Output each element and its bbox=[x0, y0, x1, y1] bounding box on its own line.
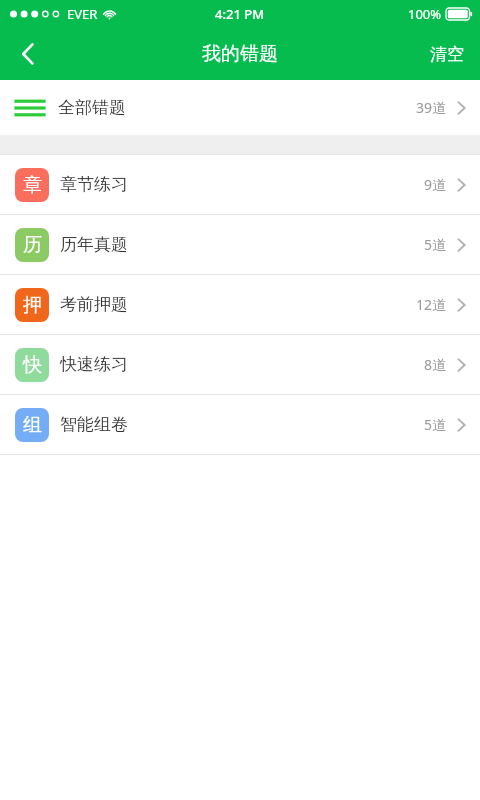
staticText: 5道 bbox=[424, 415, 447, 434]
button[interactable]: 组 bbox=[0, 395, 480, 454]
staticText: 智能组卷 bbox=[60, 414, 128, 435]
staticText: 快速练习 bbox=[60, 354, 128, 375]
button[interactable]: 押 bbox=[0, 275, 480, 334]
staticText: 8道 bbox=[424, 355, 447, 374]
staticText: 章节练习 bbox=[60, 174, 128, 195]
staticText: 考前押题 bbox=[60, 294, 128, 315]
button[interactable]: Back bbox=[0, 28, 56, 80]
staticText: 4:21 PM bbox=[215, 5, 265, 23]
button[interactable]: 快 bbox=[0, 335, 480, 394]
staticText: 快 bbox=[23, 353, 42, 377]
staticText: 我的错题 bbox=[202, 42, 278, 66]
staticText: 组 bbox=[23, 413, 42, 437]
staticText: 9道 bbox=[424, 175, 447, 194]
staticText: 历 bbox=[23, 233, 42, 257]
staticText: 5道 bbox=[424, 235, 447, 254]
button[interactable]: 历 bbox=[0, 215, 480, 274]
staticText: 39道 bbox=[416, 98, 447, 117]
staticText: EVER bbox=[67, 5, 98, 23]
staticText: 12道 bbox=[416, 295, 447, 314]
staticText: 清空 bbox=[430, 44, 464, 65]
staticText: 100% bbox=[408, 5, 442, 23]
staticText: 全部错题 bbox=[58, 97, 126, 118]
staticText: 历年真题 bbox=[60, 234, 128, 255]
button[interactable]: 全部错题 bbox=[0, 80, 480, 135]
staticText: 押 bbox=[23, 293, 42, 317]
button[interactable]: 清空 bbox=[414, 28, 480, 80]
button[interactable]: 章 bbox=[0, 155, 480, 214]
staticText: 章 bbox=[23, 173, 42, 197]
